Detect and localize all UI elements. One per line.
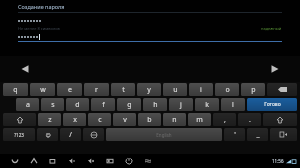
button[interactable]: Previous suggestions (0, 56, 300, 82)
button[interactable]: n (163, 113, 186, 126)
staticText: c (98, 115, 102, 125)
button[interactable]: d (66, 98, 89, 111)
staticText: z (48, 115, 52, 125)
button[interactable]: w (30, 83, 55, 96)
button[interactable]: v (113, 113, 136, 126)
button[interactable]: Volume up (86, 156, 96, 166)
button[interactable]: r (84, 83, 109, 96)
button[interactable]: _ (247, 128, 268, 141)
staticText: ?123 (14, 132, 24, 138)
staticText: a (26, 100, 30, 110)
button[interactable]: b (138, 113, 161, 126)
staticText: . (249, 115, 251, 125)
other: Shift (263, 113, 297, 126)
staticText: s (51, 100, 55, 110)
staticText: r (95, 85, 98, 95)
button[interactable]: Change language (83, 128, 104, 141)
button[interactable]: q (3, 83, 28, 96)
staticText: d (75, 100, 80, 110)
staticText: t (122, 85, 125, 95)
button[interactable]: Shift (263, 113, 297, 126)
button[interactable]: a (16, 98, 39, 111)
button[interactable]: x (63, 113, 86, 126)
button[interactable]: . (238, 113, 261, 126)
button[interactable]: ' (224, 128, 245, 141)
button[interactable]: Backspace (267, 83, 297, 96)
button[interactable]: c (88, 113, 111, 126)
button[interactable] (18, 17, 282, 24)
button[interactable]: Screenshot (105, 156, 115, 166)
button[interactable]: Home (29, 156, 39, 166)
staticText: u (173, 85, 178, 95)
other: Change language (83, 128, 104, 141)
staticText: надежный (261, 26, 282, 31)
staticText: i (200, 85, 202, 95)
staticText: h (153, 100, 158, 110)
button[interactable]: l (221, 98, 245, 111)
button[interactable]: y (137, 83, 161, 96)
staticText: x (73, 115, 77, 125)
button[interactable]: z (38, 113, 61, 126)
button[interactable]: o (215, 83, 239, 96)
button[interactable]: ☺ (37, 128, 58, 141)
button[interactable]: English (106, 128, 222, 141)
button[interactable]: Previous suggestions (18, 62, 32, 76)
button[interactable]: h (143, 98, 167, 111)
staticText: / (69, 130, 72, 140)
staticText: ☺ (45, 132, 51, 138)
staticText: e (68, 85, 72, 95)
staticText: o (225, 85, 230, 95)
staticText: Не менее 8 символов (18, 26, 60, 31)
staticText: l (232, 100, 234, 110)
button[interactable]: u (163, 83, 187, 96)
other: Shift (3, 113, 36, 126)
button[interactable]: ?123 (3, 128, 35, 141)
button[interactable]: Recent apps (48, 156, 58, 166)
button[interactable]: p (241, 83, 265, 96)
staticText: v (123, 115, 127, 125)
button[interactable]: j (169, 98, 193, 111)
staticText: k (205, 100, 209, 110)
staticText: 11:56 (272, 158, 284, 164)
button[interactable]: s (41, 98, 64, 111)
button[interactable]: / (60, 128, 81, 141)
staticText: Готово (264, 101, 281, 108)
staticText: p (251, 85, 256, 95)
button[interactable]: e (57, 83, 82, 96)
staticText: j (180, 100, 182, 110)
staticText: n (172, 115, 177, 125)
button[interactable]: f (91, 98, 115, 111)
staticText: w (40, 85, 46, 95)
button[interactable] (18, 33, 282, 41)
other: Hide keyboard (270, 128, 297, 141)
button[interactable]: Shift (3, 113, 36, 126)
staticText: _ (256, 130, 260, 140)
staticText: m (196, 115, 203, 125)
staticText: f (102, 100, 105, 110)
staticText: y (147, 85, 151, 95)
button[interactable]: m (188, 113, 211, 126)
button[interactable]: t (111, 83, 135, 96)
button[interactable]: k (195, 98, 219, 111)
button[interactable]: Volume down (67, 156, 77, 166)
button[interactable]: Hide keyboard (270, 128, 297, 141)
staticText: g (127, 100, 132, 110)
button[interactable]: , (213, 113, 236, 126)
button[interactable]: Quick settings (143, 156, 153, 166)
staticText: , (224, 115, 226, 125)
button[interactable]: More suggestions (268, 62, 282, 76)
staticText: q (13, 85, 18, 95)
button[interactable]: i (189, 83, 213, 96)
button[interactable]: Готово (247, 98, 297, 111)
staticText: Создание пароля (18, 3, 65, 10)
staticText: ' (234, 130, 236, 140)
staticText: English (156, 132, 172, 138)
button[interactable]: g (117, 98, 141, 111)
button[interactable]: Back (10, 156, 20, 166)
staticText: b (147, 115, 152, 125)
button[interactable]: Power (124, 156, 134, 166)
other: Backspace (267, 83, 297, 96)
